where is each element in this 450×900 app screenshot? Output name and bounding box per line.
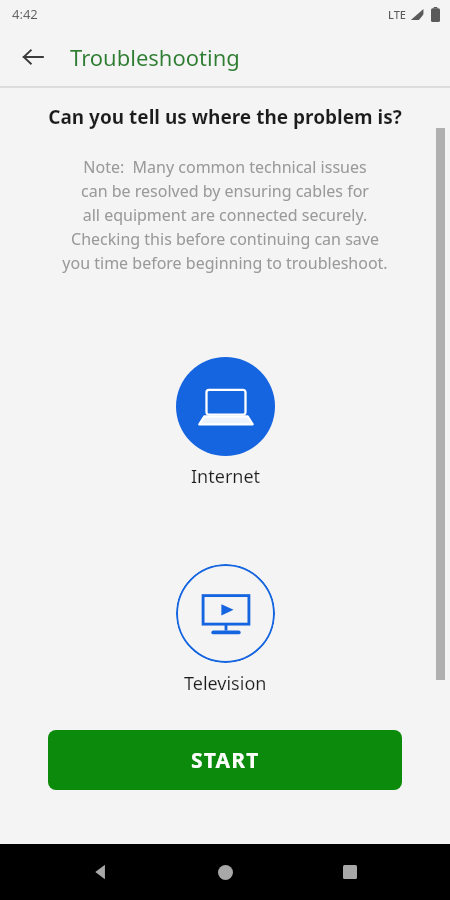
staticText: LTE [388, 7, 406, 22]
button[interactable]: START [48, 730, 402, 790]
button[interactable]: Television [176, 564, 275, 696]
staticText: Troubleshooting [70, 42, 240, 72]
staticText: Note: Many common technical issues can b… [18, 156, 432, 274]
button[interactable]: Back [10, 34, 56, 80]
button[interactable]: Home [201, 848, 249, 896]
button[interactable]: Recent apps [326, 848, 374, 896]
staticText: Television [184, 671, 267, 696]
staticText: START [191, 746, 260, 775]
staticText: 4:42 [12, 5, 38, 23]
staticText: Internet [191, 464, 261, 489]
button[interactable]: Internet [176, 357, 275, 489]
button[interactable]: Back [77, 848, 125, 896]
staticText: Can you tell us where the problem is? [48, 104, 402, 130]
